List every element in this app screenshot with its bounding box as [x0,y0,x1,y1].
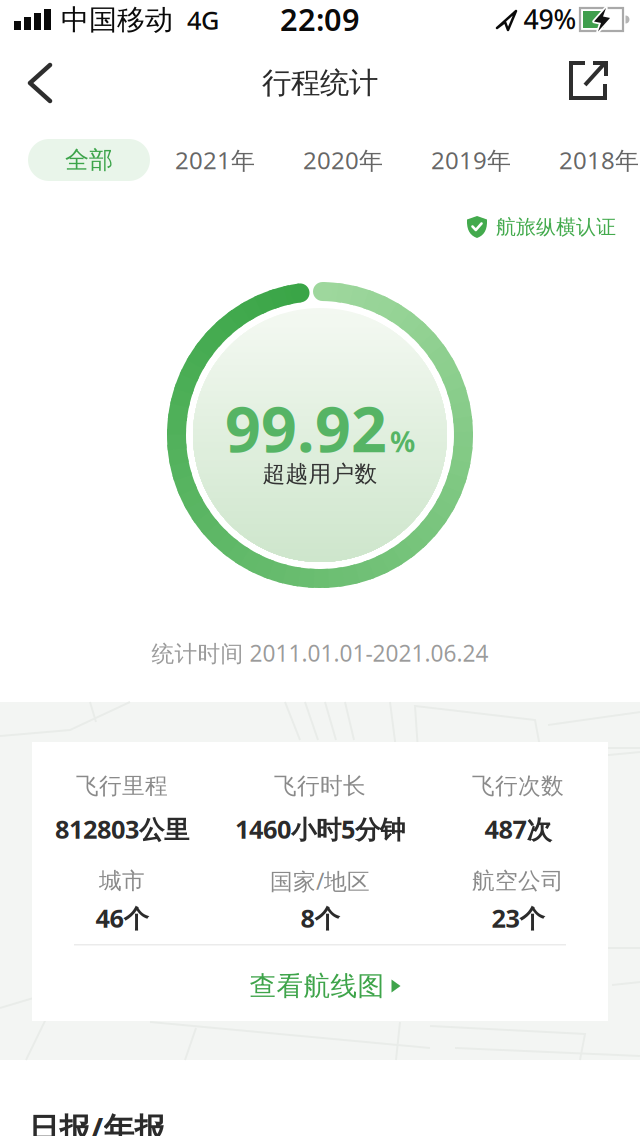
staticText: 487次 [484,812,551,846]
button[interactable]: Back [18,59,66,107]
staticText: 行程统计 [262,65,378,101]
staticText: 统计时间 2011.01.01-2021.06.24 [151,638,488,668]
staticText: 飞行次数 [472,772,564,800]
button[interactable]: 全部 [28,139,150,181]
button[interactable]: 航旅纵横认证 [466,215,616,239]
staticText: 飞行里程 [76,772,168,800]
staticText: 22:09 [280,0,360,39]
staticText: 8个 [300,901,339,935]
staticText: 46个 [95,901,148,935]
staticText: 国家/地区 [270,866,370,896]
staticText: 航空公司 [472,867,564,895]
staticText: 超越用户数 [262,460,377,488]
staticText: % [390,423,415,460]
button[interactable]: 2020年 [283,139,403,181]
staticText: 2018年 [559,144,639,176]
staticText: 2021年 [175,144,255,176]
staticText: 全部 [65,145,113,175]
staticText: 日报/年报 [28,1108,165,1136]
button[interactable]: 2018年 [539,139,640,181]
staticText: 1460小时5分钟 [235,812,405,846]
staticText: 2019年 [431,144,511,176]
staticText: 812803公里 [55,812,189,846]
staticText: 查看航线图 [249,970,384,1002]
staticText: 城市 [99,867,145,895]
staticText: 2020年 [303,144,383,176]
staticText: 99.92 [225,386,387,470]
staticText: 航旅纵横认证 [496,215,616,239]
staticText: 飞行时长 [274,772,366,800]
button[interactable]: Share [565,59,611,105]
staticText: 23个 [491,901,544,935]
staticText: 4G [187,3,219,37]
button[interactable]: 查看航线图 [249,970,400,1002]
button[interactable]: 2019年 [411,139,531,181]
staticText: 中国移动 [61,3,173,37]
button[interactable]: 2021年 [155,139,275,181]
staticText: 49% [523,1,576,37]
